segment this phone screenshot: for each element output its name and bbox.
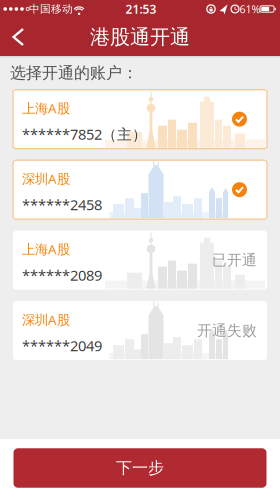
staticText: ******2458 xyxy=(22,195,102,214)
staticText: 上海A股 xyxy=(22,240,70,258)
staticText: 下一步 xyxy=(116,458,164,478)
staticText: 深圳A股 xyxy=(22,311,70,328)
button[interactable]: 上海A股 xyxy=(13,231,267,290)
staticText: ******2049 xyxy=(22,336,102,355)
staticText: 开通失败 xyxy=(197,322,257,340)
button[interactable]: 深圳A股 xyxy=(13,160,267,219)
staticText: 港股通开通 xyxy=(90,25,190,49)
staticText: 选择开通的账户： xyxy=(10,63,138,83)
button[interactable]: 下一步 xyxy=(13,448,266,488)
button[interactable]: Back xyxy=(4,25,28,48)
staticText: 中国移动 xyxy=(29,2,73,15)
button[interactable]: 上海A股 xyxy=(13,90,267,149)
staticText: 21:53 xyxy=(125,1,156,17)
button[interactable]: 深圳A股 xyxy=(13,301,267,360)
staticText: ******7852（主） xyxy=(22,124,147,144)
staticText: 上海A股 xyxy=(22,99,70,117)
staticText: 深圳A股 xyxy=(22,170,70,187)
staticText: ******2089 xyxy=(22,265,102,285)
staticText: 已开通 xyxy=(212,251,257,269)
staticText: 61% xyxy=(239,2,260,16)
